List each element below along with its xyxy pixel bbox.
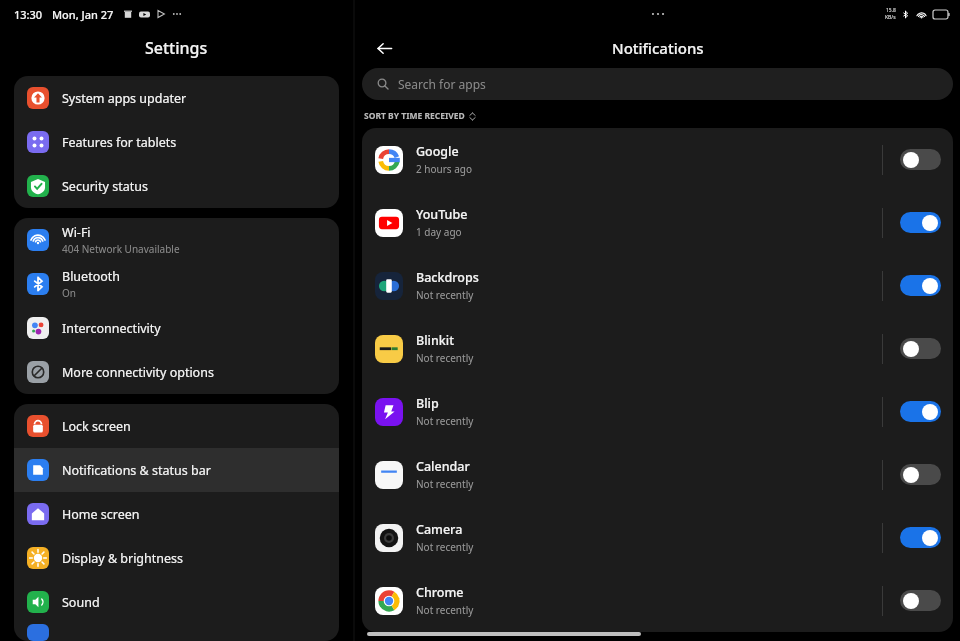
staticText: Calendar [416,458,470,475]
staticText: 13:30 [14,7,43,22]
button[interactable]: Security status [14,164,339,208]
button[interactable]: Display & brightness [14,536,339,580]
button[interactable]: Enabled [900,212,941,233]
button[interactable]: Backdrops [362,254,953,317]
button[interactable]: Blip [362,380,953,443]
button[interactable]: SORT BY TIME RECEIVED [364,110,476,122]
button[interactable]: Disabled [900,338,941,359]
staticText: YouTube [416,206,468,223]
staticText: More connectivity options [62,364,214,381]
button[interactable]: Enabled [900,275,941,296]
button[interactable]: Disabled [900,590,941,611]
button[interactable]: System apps updater [14,76,339,120]
staticText: Not recently [416,288,474,302]
button[interactable]: Sound [14,580,339,624]
staticText: SORT BY TIME RECEIVED [364,110,465,122]
staticText: Notifications & status bar [62,462,211,479]
staticText: Search for apps [398,76,486,92]
staticText: Notifications [612,38,704,58]
button[interactable]: Enabled [900,527,941,548]
staticText: Not recently [416,477,474,491]
button[interactable]: Search for apps [362,68,953,100]
staticText: 2 hours ago [416,162,473,176]
staticText: Not recently [416,414,474,428]
button[interactable]: More connectivity options [14,350,339,394]
staticText: 15.8 [886,7,896,14]
staticText: Blinkit [416,332,454,349]
button[interactable]: Lock screen [14,404,339,448]
button[interactable]: Home screen [14,492,339,536]
button[interactable]: YouTube [362,191,953,254]
button[interactable]: Back [369,33,399,63]
button[interactable]: Chrome [362,569,953,632]
staticText: Not recently [416,603,474,617]
button[interactable]: Disabled [900,149,941,170]
button[interactable] [14,624,339,641]
staticText: Settings [145,37,208,59]
staticText: Security status [62,178,148,195]
button[interactable]: Google [362,128,953,191]
staticText: 404 Network Unavailable [62,242,180,256]
button[interactable]: Enabled [900,401,941,422]
staticText: Not recently [416,351,474,365]
staticText: Home screen [62,506,140,523]
staticText: Features for tablets [62,134,177,151]
staticText: Interconnectivity [62,320,161,337]
button[interactable]: Camera [362,506,953,569]
staticText: Bluetooth [62,268,121,285]
staticText: Chrome [416,584,464,601]
staticText: Mon, Jan 27 [52,7,114,22]
button[interactable]: Wi-Fi [14,218,339,262]
staticText: Camera [416,521,463,538]
button[interactable]: Disabled [900,464,941,485]
staticText: Lock screen [62,418,131,435]
button[interactable]: Calendar [362,443,953,506]
staticText: 1 day ago [416,225,462,239]
button[interactable]: Bluetooth [14,262,339,306]
staticText: Wi-Fi [62,224,91,241]
staticText: On [62,286,76,300]
button[interactable]: Interconnectivity [14,306,339,350]
staticText: Sound [62,594,100,611]
staticText: Display & brightness [62,550,184,567]
staticText: Not recently [416,540,474,554]
staticText: Blip [416,395,439,412]
button[interactable]: Features for tablets [14,120,339,164]
staticText: Backdrops [416,269,479,286]
staticText: KB/s [885,14,896,21]
staticText: Google [416,143,459,160]
staticText: System apps updater [62,90,187,107]
button[interactable]: Blinkit [362,317,953,380]
button[interactable]: Notifications & status bar [14,448,339,492]
